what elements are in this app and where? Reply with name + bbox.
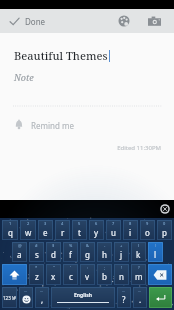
- staticText: m: [135, 271, 143, 282]
- staticText: ;: [104, 265, 106, 270]
- staticText: r: [61, 227, 65, 238]
- button[interactable]: 8: [123, 220, 138, 240]
- staticText: t: [78, 227, 81, 238]
- button[interactable]: :: [80, 264, 95, 285]
- staticText: ,: [41, 294, 44, 305]
- staticText: 4: [61, 221, 64, 226]
- staticText: x: [51, 271, 56, 282]
- staticText: Remind me: [31, 120, 74, 131]
- staticText: e: [43, 227, 48, 238]
- staticText: j: [120, 249, 123, 260]
- button[interactable]: @: [12, 242, 27, 262]
- button[interactable]: ?: [131, 264, 146, 285]
- button[interactable]: &: [80, 242, 95, 262]
- staticText: b: [102, 271, 107, 282]
- staticText: ...: [122, 288, 126, 293]
- button[interactable]: 1: [2, 220, 18, 240]
- button[interactable]: Beautiful Themes: [0, 48, 174, 63]
- staticText: 9: [146, 221, 149, 226]
- button[interactable]: +: [114, 242, 129, 262]
- staticText: ?: [138, 265, 140, 270]
- button[interactable]: #: [29, 242, 44, 262]
- button[interactable]: Camera: [142, 9, 166, 33]
- button[interactable]: Enter: [149, 287, 172, 308]
- staticText: z: [35, 271, 39, 282]
- staticText: i: [129, 227, 132, 238]
- button[interactable]: %: [63, 242, 78, 262]
- staticText: :: [87, 265, 89, 270]
- staticText: p: [162, 227, 167, 238]
- staticText: d: [51, 249, 56, 260]
- staticText: +: [120, 243, 123, 248]
- staticText: u: [111, 227, 116, 238]
- staticText: h: [102, 249, 107, 260]
- staticText: -: [104, 243, 106, 248]
- button[interactable]: (: [131, 242, 146, 262]
- staticText: ?: [122, 294, 126, 305]
- staticText: ': [70, 265, 71, 270]
- staticText: n: [119, 271, 124, 282]
- staticText: q: [8, 227, 13, 238]
- button[interactable]: !: [114, 264, 129, 285]
- button[interactable]: 3: [38, 220, 53, 240]
- staticText: c: [69, 271, 73, 282]
- staticText: g: [85, 249, 90, 260]
- staticText: ...: [40, 288, 44, 293]
- staticText: 6: [95, 221, 98, 226]
- button[interactable]: Change theme: [112, 9, 136, 33]
- staticText: 8: [129, 221, 132, 226]
- staticText: w: [25, 227, 32, 238]
- button[interactable]: Period: [133, 287, 147, 308]
- staticText: @: [18, 243, 22, 248]
- staticText: f: [69, 249, 72, 260]
- staticText: Done: [25, 16, 46, 27]
- staticText: 3: [44, 221, 47, 226]
- button[interactable]: Close keyboard: [156, 200, 174, 218]
- button[interactable]: ): [148, 242, 163, 262]
- button[interactable]: Question: [117, 287, 131, 308]
- button[interactable]: ;: [97, 264, 112, 285]
- button[interactable]: Done: [0, 9, 56, 33]
- staticText: *: [35, 265, 38, 270]
- staticText: v: [85, 271, 90, 282]
- button[interactable]: 9: [140, 220, 155, 240]
- staticText: ...: [24, 288, 28, 293]
- staticText: a: [17, 249, 22, 260]
- staticText: 123 !#: [3, 295, 17, 301]
- staticText: #: [35, 243, 38, 248]
- button[interactable]: Shift: [2, 264, 27, 285]
- staticText: $: [52, 243, 55, 248]
- button[interactable]: 5: [72, 220, 87, 240]
- button[interactable]: Emoji: [19, 287, 33, 308]
- button[interactable]: 6: [89, 220, 104, 240]
- button[interactable]: Remind me: [0, 116, 174, 134]
- staticText: y: [94, 227, 99, 238]
- staticText: ": [53, 265, 55, 270]
- staticText: k: [136, 249, 141, 260]
- staticText: 2: [27, 221, 30, 226]
- staticText: .: [139, 294, 142, 305]
- button[interactable]: ': [63, 264, 78, 285]
- staticText: Beautiful Themes: [14, 48, 108, 63]
- button[interactable]: Note: [0, 71, 174, 83]
- staticText: o: [145, 227, 150, 238]
- button[interactable]: 0: [157, 220, 172, 240]
- button[interactable]: Backspace: [148, 264, 172, 285]
- staticText: %: [69, 243, 73, 248]
- button[interactable]: *: [29, 264, 44, 285]
- button[interactable]: 4: [55, 220, 70, 240]
- button[interactable]: Symbols: [2, 287, 17, 308]
- staticText: 7: [112, 221, 115, 226]
- button[interactable]: ": [46, 264, 61, 285]
- staticText: s: [35, 249, 39, 260]
- staticText: Edited 11:30PM: [117, 144, 161, 152]
- staticText: Note: [14, 71, 34, 83]
- button[interactable]: 2: [20, 220, 36, 240]
- button[interactable]: -: [97, 242, 112, 262]
- staticText: (: [138, 243, 140, 248]
- staticText: 1: [9, 221, 12, 226]
- button[interactable]: Space: [51, 287, 115, 308]
- button[interactable]: 7: [106, 220, 121, 240]
- button[interactable]: $: [46, 242, 61, 262]
- button[interactable]: Comma: [35, 287, 49, 308]
